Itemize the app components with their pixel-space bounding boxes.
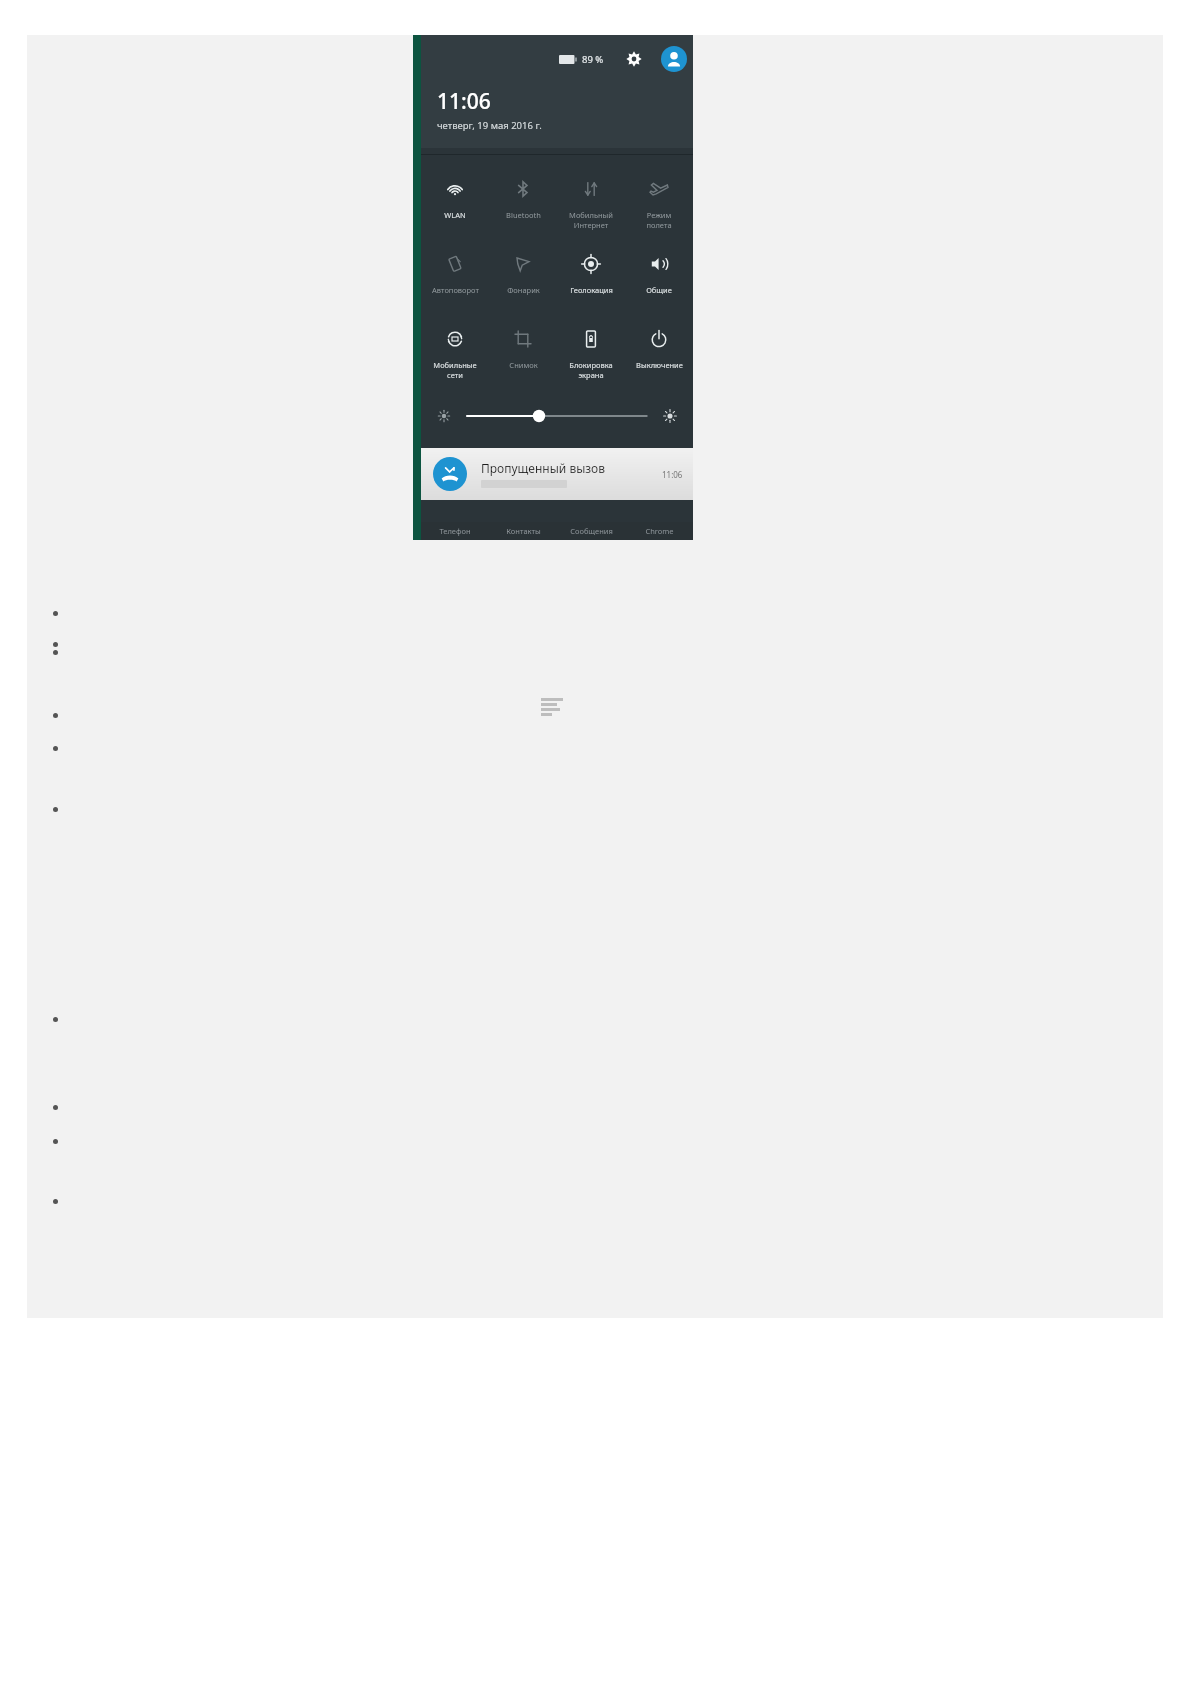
staticText: 11:06 [437,87,491,116]
staticText: WLAN [444,210,466,220]
button[interactable] [467,407,647,425]
staticText: Bluetooth [506,210,541,220]
staticText: Контакты [506,526,541,536]
staticText: Блокировка экрана [569,360,613,380]
staticText: Chrome [645,526,674,536]
button[interactable]: WLAN [421,169,489,244]
staticText: Общие [646,285,672,295]
button[interactable]: Телефон [421,522,489,540]
staticText: Выключение [636,360,683,370]
staticText: 89 % [582,53,604,66]
button[interactable]: Контакты [489,522,557,540]
button[interactable]: Settings [621,46,647,72]
staticText: Геолокация [570,285,613,295]
button[interactable]: Блокировка экрана [557,319,625,394]
button[interactable]: Режим полета [625,169,693,244]
button[interactable]: Снимок [489,319,557,394]
staticText: Мобильный Интернет [569,210,613,230]
staticText: Телефон [439,526,471,536]
staticText: Автоповорот [432,285,479,295]
staticText: Режим полета [646,210,672,230]
button[interactable]: Мобильный Интернет [557,169,625,244]
button[interactable]: Пропущенный вызов [421,448,693,500]
staticText: Снимок [509,360,538,370]
button[interactable]: Общие [625,244,693,319]
staticText: четверг, 19 мая 2016 г. [437,119,542,132]
button[interactable]: Выключение [625,319,693,394]
button[interactable]: Автоповорот [421,244,489,319]
staticText: 11:06 [662,469,683,480]
staticText: Пропущенный вызов [481,460,606,476]
staticText: Сообщения [570,526,613,536]
button[interactable]: Геолокация [557,244,625,319]
button[interactable]: Фонарик [489,244,557,319]
button[interactable]: User profile [661,46,687,72]
button[interactable]: Сообщения [557,522,625,540]
staticText: Мобильные сети [433,360,477,380]
staticText: Фонарик [507,285,540,295]
button[interactable]: Bluetooth [489,169,557,244]
button[interactable]: Мобильные сети [421,319,489,394]
button[interactable]: Chrome [625,522,693,540]
